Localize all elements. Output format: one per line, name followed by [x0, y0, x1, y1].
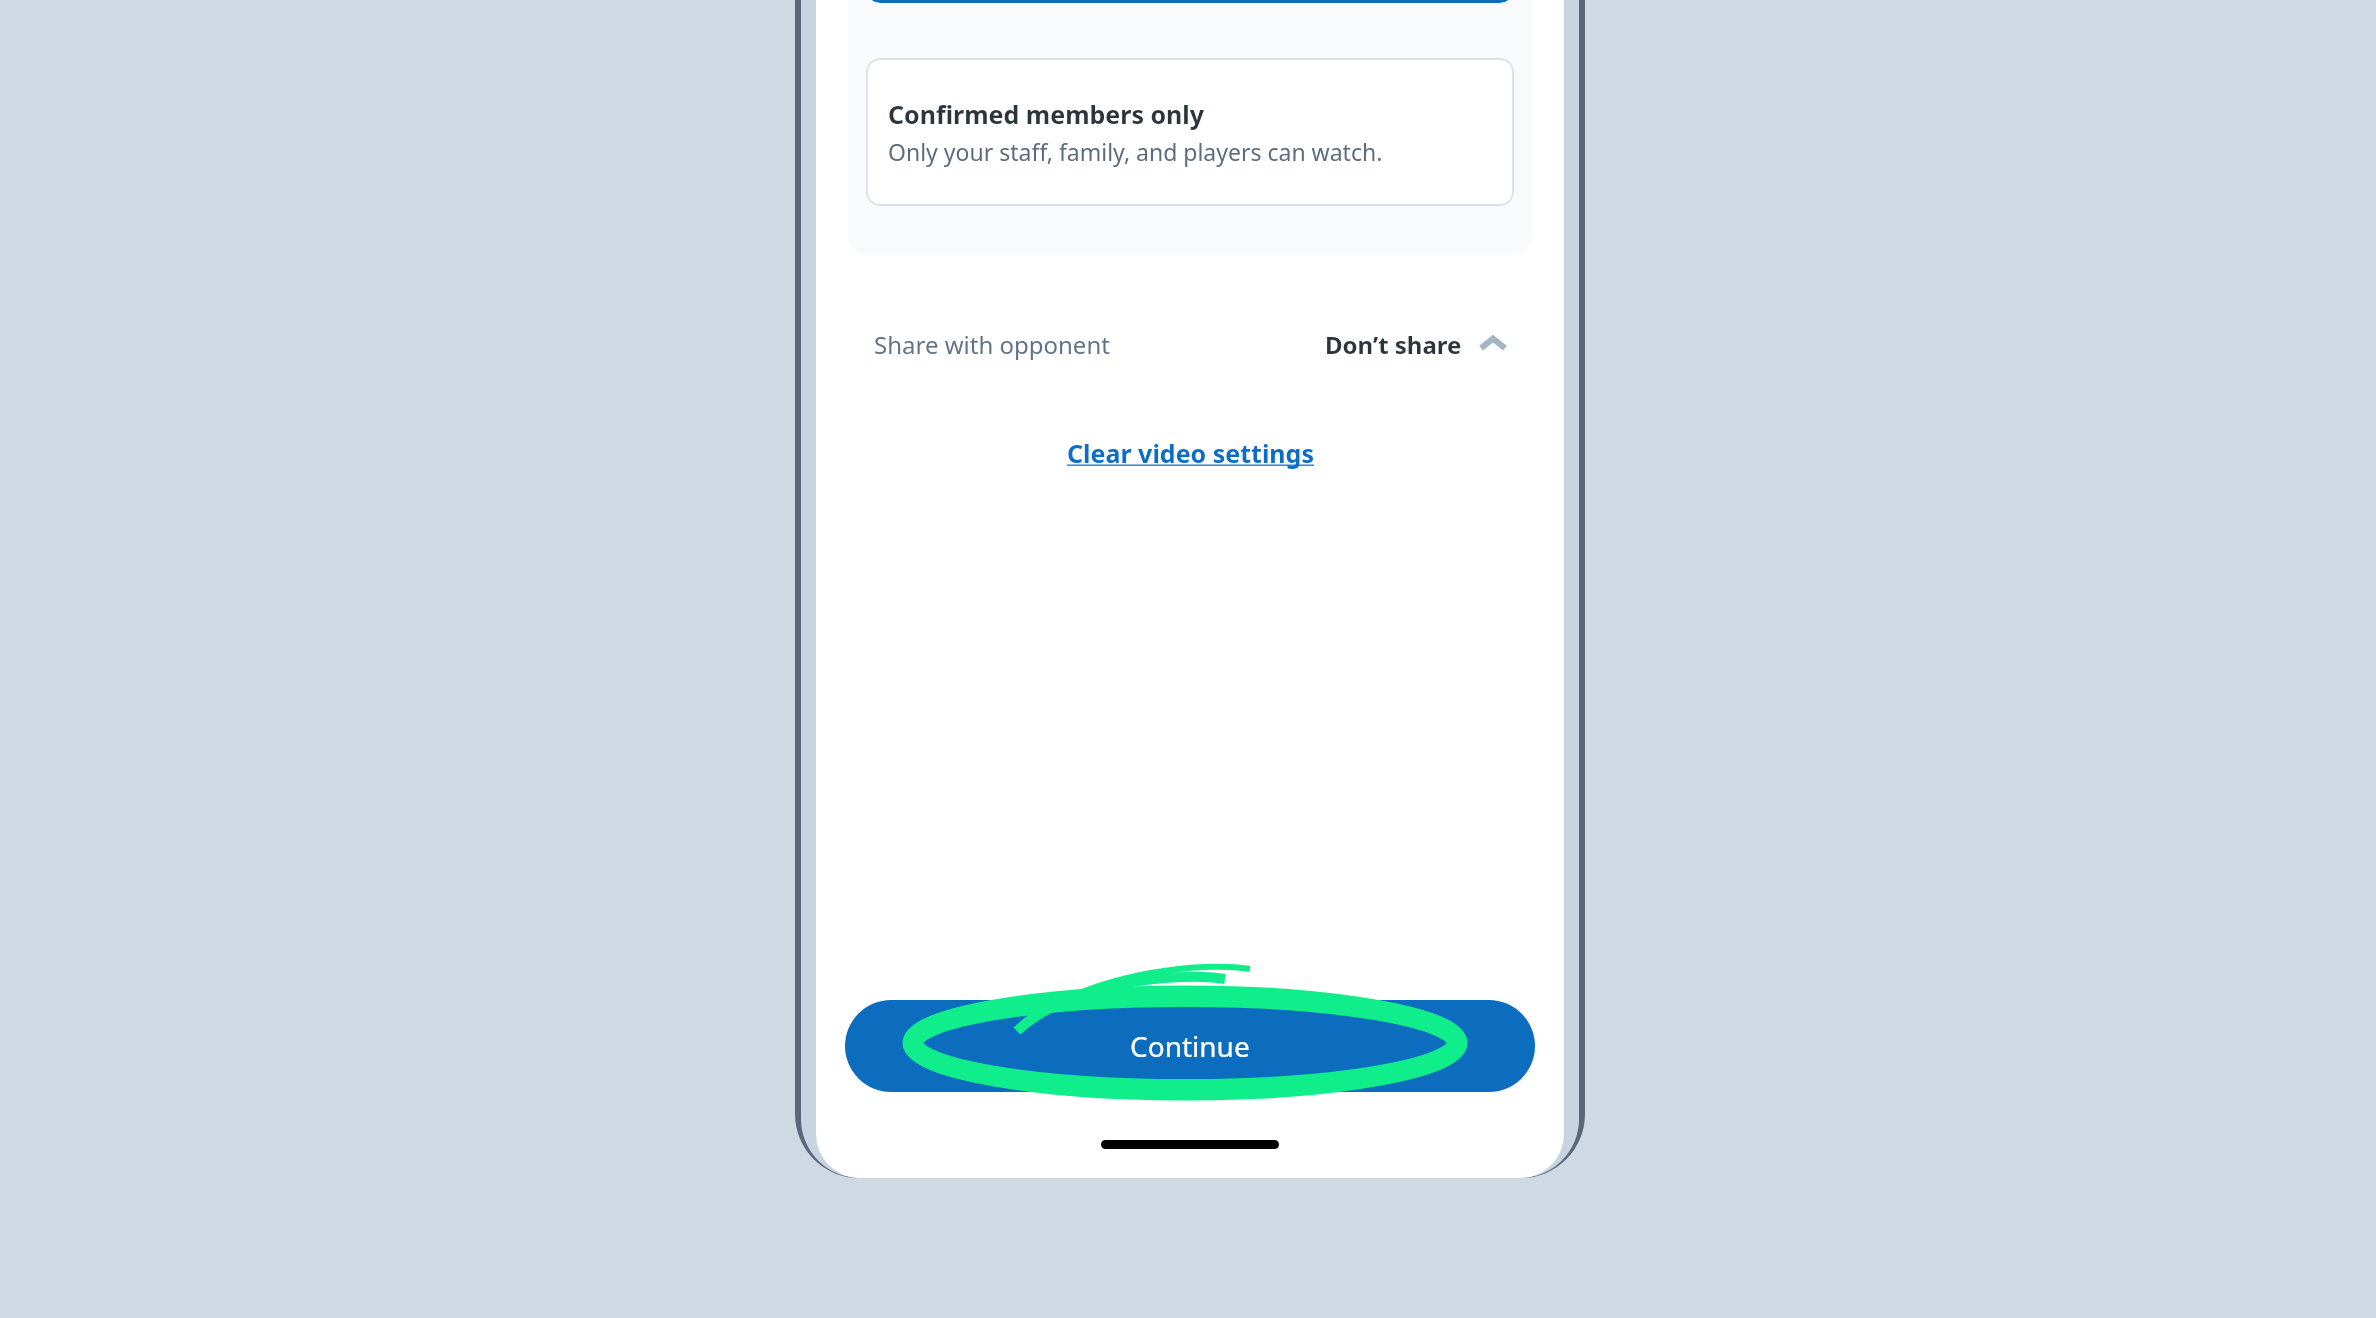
staticText: Share with opponent — [874, 328, 1110, 361]
staticText: Confirmed members only — [888, 97, 1205, 131]
staticText: Continue — [1130, 1027, 1250, 1065]
other: Collapse — [1476, 327, 1510, 361]
button[interactable]: Share with opponent — [848, 292, 1532, 396]
button[interactable]: Anyone — [866, 0, 1514, 3]
staticText: Clear video settings — [1067, 436, 1314, 470]
button[interactable]: Continue — [845, 1000, 1535, 1092]
button[interactable]: Confirmed members only — [866, 58, 1514, 206]
button[interactable]: Clear video settings — [1061, 432, 1320, 474]
staticText: Only your staff, family, and players can… — [888, 136, 1383, 167]
staticText: Don’t share — [1325, 328, 1462, 361]
